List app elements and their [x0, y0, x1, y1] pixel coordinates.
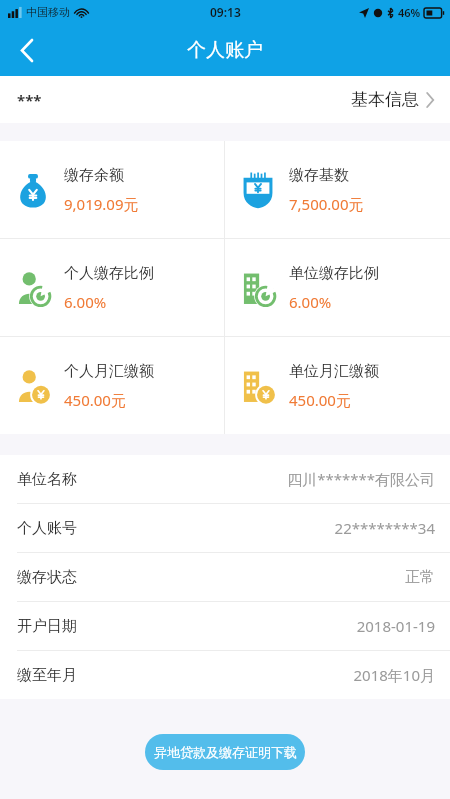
button[interactable]: 缴存基数	[225, 141, 450, 238]
button[interactable]: 开户日期	[0, 602, 450, 650]
button[interactable]: Back	[0, 24, 54, 76]
staticText: 缴存余额	[64, 166, 124, 185]
staticText: 缴至年月	[17, 666, 77, 685]
button[interactable]: 缴存余额	[0, 141, 224, 238]
staticText: 异地贷款及缴存证明下载	[154, 744, 297, 760]
staticText: 单位缴存比例	[289, 264, 379, 283]
button[interactable]: 基本信息	[349, 83, 436, 116]
button[interactable]: 缴至年月	[0, 651, 450, 699]
staticText: 6.00%	[289, 292, 332, 312]
staticText: 基本信息	[351, 89, 419, 110]
button[interactable]: 个人月汇缴额	[0, 337, 224, 434]
button[interactable]: 单位缴存比例	[225, 239, 450, 336]
button[interactable]: 个人缴存比例	[0, 239, 224, 336]
staticText: 缴存状态	[17, 568, 77, 587]
staticText: 450.00元	[64, 390, 126, 410]
staticText: 个人账户	[187, 38, 263, 62]
staticText: 单位月汇缴额	[289, 362, 379, 381]
staticText: 9,019.09元	[64, 194, 139, 214]
staticText: 正常	[405, 568, 435, 587]
staticText: 开户日期	[17, 617, 77, 636]
staticText: 2018-01-19	[356, 616, 435, 636]
staticText: 个人缴存比例	[64, 264, 154, 283]
staticText: 单位名称	[17, 470, 77, 489]
staticText: 7,500.00元	[289, 194, 364, 214]
staticText: 中国移动	[26, 5, 70, 19]
staticText: 个人账号	[17, 519, 77, 538]
staticText: 四川*******有限公司	[287, 469, 435, 489]
button[interactable]: 个人账号	[0, 504, 450, 552]
button[interactable]: 单位月汇缴额	[225, 337, 450, 434]
staticText: ***	[17, 90, 42, 110]
staticText: 22********34	[334, 518, 435, 538]
button[interactable]: 缴存状态	[0, 553, 450, 601]
staticText: 6.00%	[64, 292, 107, 312]
staticText: 450.00元	[289, 390, 351, 410]
staticText: 46%	[398, 5, 421, 20]
staticText: 个人月汇缴额	[64, 362, 154, 381]
button[interactable]: 单位名称	[0, 455, 450, 503]
staticText: 09:13	[210, 4, 241, 20]
staticText: 缴存基数	[289, 166, 349, 185]
staticText: 2018年10月	[353, 665, 435, 685]
button[interactable]: 异地贷款及缴存证明下载	[145, 734, 305, 770]
